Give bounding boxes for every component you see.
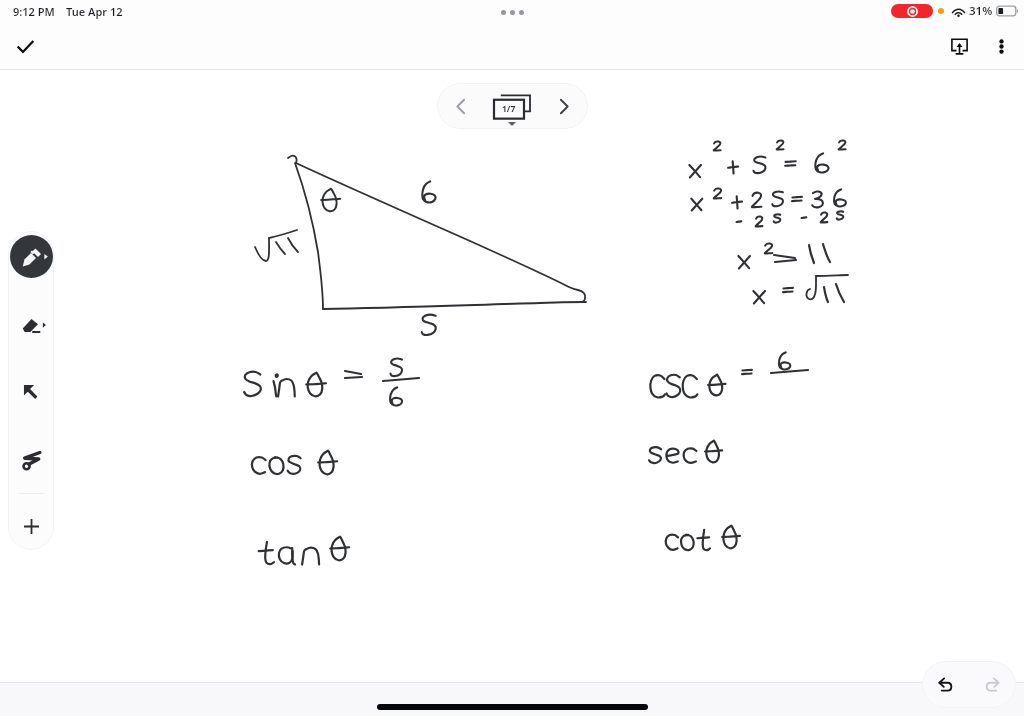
staticText: 1/7 bbox=[502, 103, 516, 115]
button[interactable]: Select bbox=[14, 375, 48, 409]
button[interactable]: Pen bbox=[10, 235, 53, 278]
button[interactable]: Redo bbox=[969, 661, 1016, 708]
staticText: 9:12 PM bbox=[13, 4, 55, 19]
button[interactable]: Done bbox=[5, 26, 45, 66]
button[interactable]: Eraser bbox=[14, 308, 48, 342]
button[interactable]: Undo bbox=[922, 661, 969, 708]
button[interactable]: Add tool bbox=[14, 509, 48, 543]
staticText: Tue Apr 12 bbox=[66, 4, 123, 19]
button[interactable]: Previous page bbox=[437, 83, 483, 129]
button[interactable]: Next page bbox=[541, 83, 587, 129]
button[interactable]: More options bbox=[981, 26, 1021, 66]
button[interactable]: Present bbox=[937, 24, 981, 68]
staticText: 31% bbox=[969, 3, 993, 19]
button[interactable]: Pages bbox=[483, 83, 541, 129]
button[interactable]: Lasso select bbox=[14, 443, 48, 477]
